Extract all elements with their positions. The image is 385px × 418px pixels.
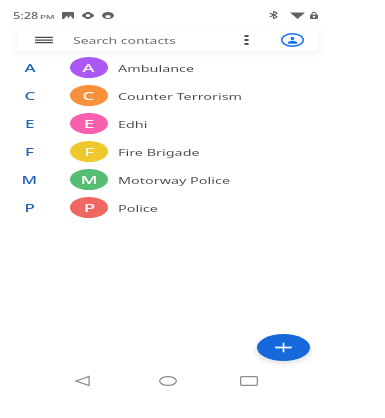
staticText: A bbox=[24, 61, 36, 75]
button[interactable]: E bbox=[0, 110, 385, 138]
button[interactable]: A bbox=[0, 54, 385, 82]
staticText: Search contacts bbox=[73, 34, 177, 46]
button[interactable]: Recent apps bbox=[229, 366, 269, 396]
button[interactable]: M bbox=[0, 166, 385, 194]
button[interactable]: F bbox=[0, 138, 385, 166]
staticText: M bbox=[81, 172, 98, 188]
staticText: Ambulance bbox=[118, 62, 195, 74]
staticText: P bbox=[84, 200, 95, 216]
button[interactable]: Home bbox=[148, 366, 188, 396]
button[interactable]: Back bbox=[62, 366, 102, 396]
button[interactable]: C bbox=[0, 82, 385, 110]
staticText: M bbox=[21, 173, 38, 187]
staticText: E bbox=[25, 117, 35, 131]
staticText: Counter Terrorism bbox=[118, 90, 243, 102]
staticText: P bbox=[24, 201, 36, 215]
button[interactable]: More options bbox=[234, 28, 258, 51]
staticText: Police bbox=[118, 202, 158, 214]
button[interactable]: P bbox=[0, 194, 385, 222]
button[interactable]: Account bbox=[274, 28, 310, 51]
staticText: Fire Brigade bbox=[118, 146, 201, 158]
staticText: C bbox=[24, 89, 36, 103]
staticText: C bbox=[83, 88, 95, 104]
staticText: Edhi bbox=[118, 118, 148, 130]
button[interactable]: Create new contact bbox=[255, 332, 312, 363]
staticText: A bbox=[83, 60, 95, 76]
button[interactable]: Open navigation menu bbox=[26, 28, 62, 51]
staticText: E bbox=[84, 116, 95, 132]
button[interactable]: Open navigation menu bbox=[17, 28, 318, 51]
staticText: Motorway Police bbox=[118, 174, 232, 186]
staticText: PM bbox=[40, 13, 56, 21]
staticText: 5:28 bbox=[13, 10, 39, 21]
staticText: F bbox=[84, 144, 94, 160]
staticText: F bbox=[25, 145, 35, 159]
